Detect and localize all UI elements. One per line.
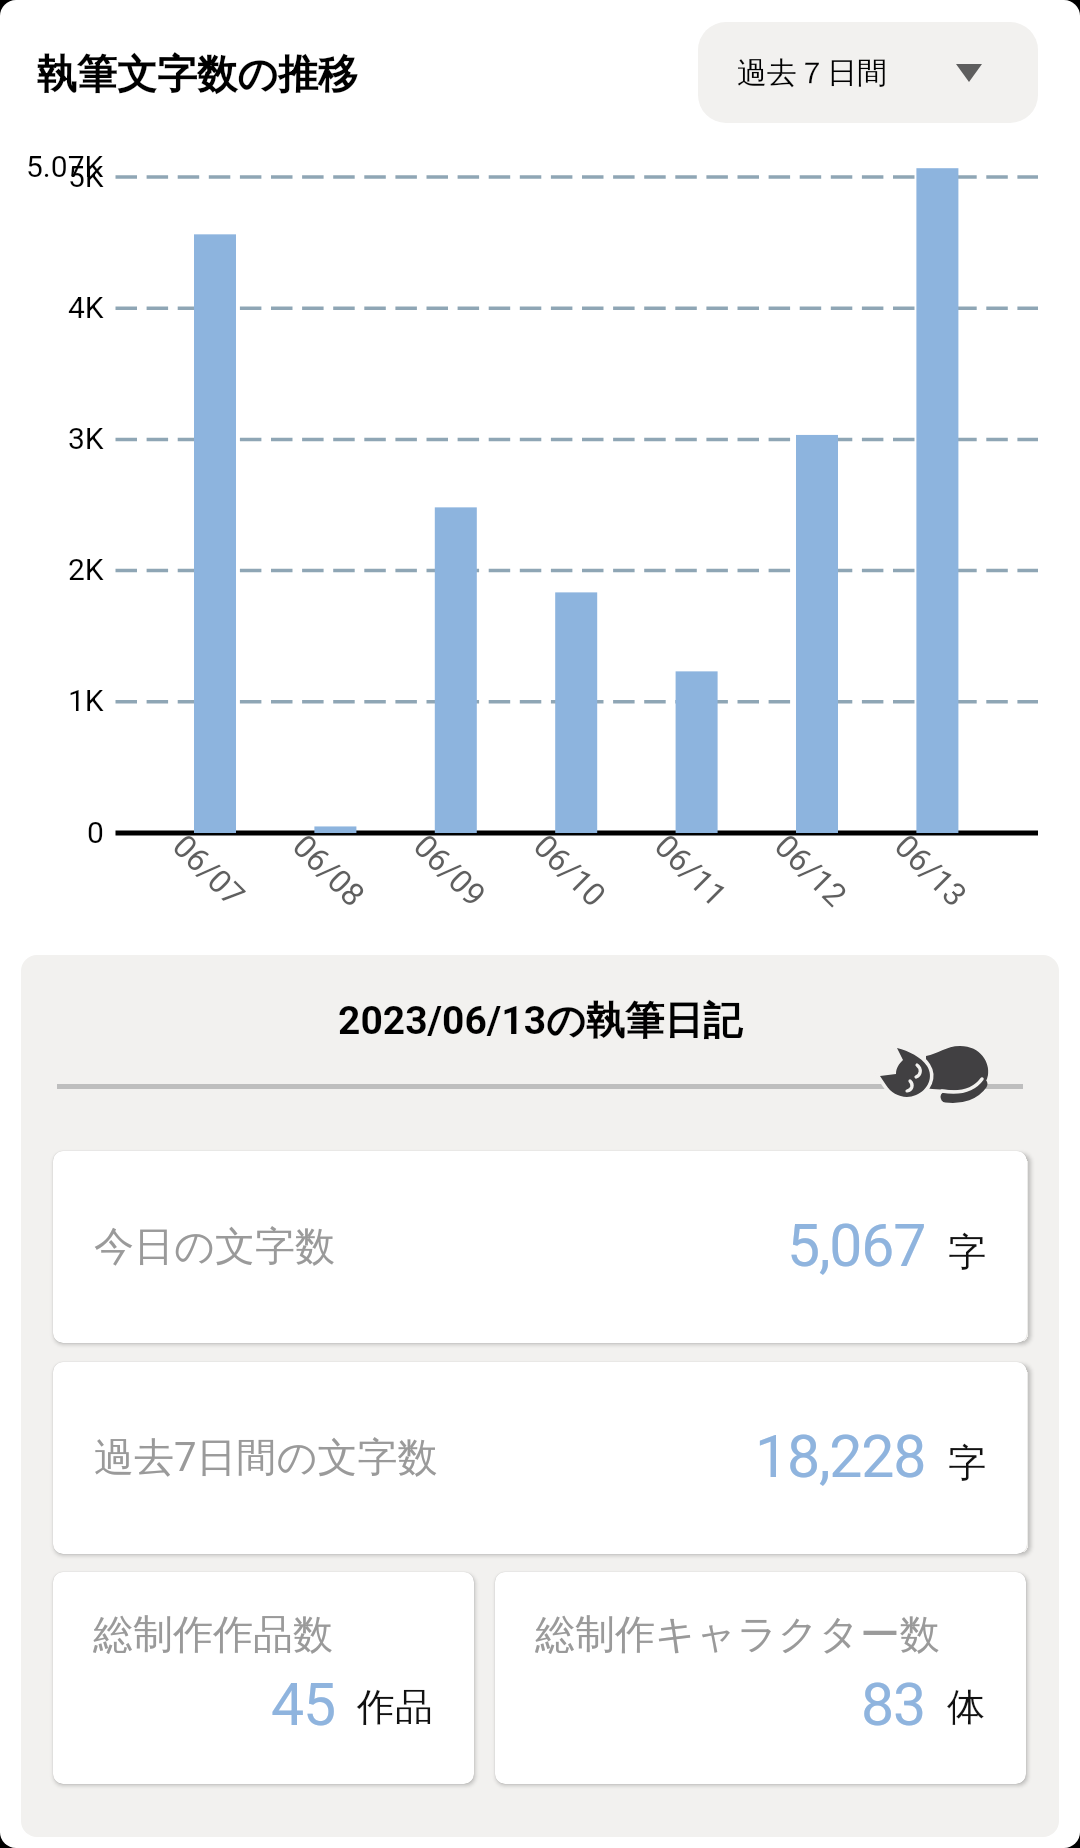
staticText: 45 [271, 1670, 335, 1739]
staticText: 06/10 [526, 827, 614, 915]
staticText: 1K [68, 683, 104, 718]
button[interactable]: 過去７日間 [698, 22, 1038, 123]
staticText: 総制作作品数 [93, 1609, 333, 1659]
staticText: 今日の文字数 [94, 1221, 335, 1271]
other: Sleeping cat [876, 1042, 996, 1110]
staticText: 06/09 [406, 827, 494, 915]
staticText: 過去７日間 [737, 54, 887, 92]
staticText: 5.07K [26, 149, 104, 184]
staticText: 字 [948, 1439, 986, 1487]
staticText: 5K [68, 159, 104, 194]
staticText: 総制作キャラクター数 [535, 1609, 940, 1659]
staticText: 4K [68, 290, 104, 325]
staticText: 06/12 [767, 827, 855, 915]
staticText: 過去7日間の文字数 [94, 1432, 438, 1482]
button[interactable]: 総制作キャラクター数 [495, 1572, 1026, 1784]
staticText: 06/08 [285, 827, 373, 915]
staticText: 18,228 [755, 1422, 926, 1491]
staticText: 3K [68, 421, 104, 456]
staticText: 2023/06/13の執筆日記 [21, 996, 1059, 1045]
staticText: 06/07 [165, 827, 253, 915]
staticText: 体 [947, 1683, 985, 1731]
staticText: 0 [87, 815, 104, 850]
staticText: 83 [861, 1670, 925, 1739]
staticText: 作品 [357, 1683, 433, 1731]
staticText: 06/13 [887, 827, 975, 915]
button[interactable]: 総制作作品数 [53, 1572, 474, 1784]
staticText: 字 [948, 1228, 986, 1276]
staticText: 5,067 [787, 1211, 926, 1280]
staticText: 06/11 [647, 827, 735, 915]
button[interactable]: 過去7日間の文字数 [53, 1362, 1027, 1554]
button[interactable]: 今日の文字数 [53, 1151, 1027, 1343]
staticText: 執筆文字数の推移 [37, 49, 358, 99]
staticText: 2K [68, 552, 104, 587]
